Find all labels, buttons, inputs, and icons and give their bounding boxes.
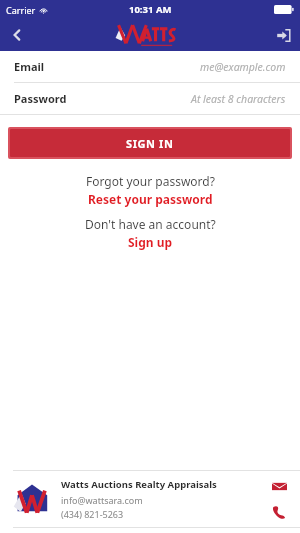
button[interactable]: Password — [0, 83, 300, 114]
staticText: Carrier — [6, 4, 36, 16]
staticText: At least 8 characters — [191, 92, 286, 106]
staticText: me@example.com — [200, 60, 286, 74]
staticText: info@wattsara.com — [61, 494, 143, 506]
button[interactable]: Sign up — [128, 234, 173, 250]
staticText: Forgot your password? — [86, 173, 215, 189]
button[interactable]: Email — [0, 51, 300, 82]
staticText: Password — [14, 91, 67, 106]
button[interactable]: Sign in — [266, 19, 300, 51]
staticText: Sign up — [128, 234, 173, 250]
staticText: (434) 821-5263 — [61, 508, 124, 520]
staticText: SIGN IN — [126, 136, 174, 151]
button[interactable]: Reset your password — [88, 191, 213, 207]
button[interactable]: Call — [268, 501, 290, 523]
button[interactable]: SIGN IN — [10, 129, 290, 157]
button[interactable]: Email — [268, 475, 290, 497]
staticText: 10:31 AM — [129, 3, 172, 16]
staticText: Reset your password — [88, 191, 213, 207]
button[interactable]: Back — [0, 19, 34, 51]
staticText: Don't have an account? — [85, 216, 216, 232]
staticText: Email — [14, 59, 45, 74]
staticText: Watts Auctions Realty Appraisals — [61, 478, 217, 491]
